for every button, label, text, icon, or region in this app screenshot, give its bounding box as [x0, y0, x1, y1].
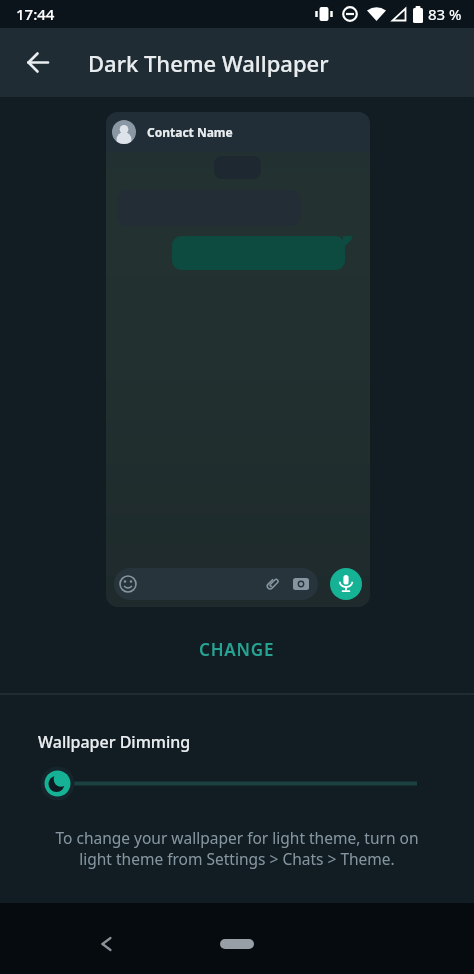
button[interactable] — [24, 759, 450, 807]
button[interactable] — [330, 568, 362, 600]
staticText: 17:44 — [16, 4, 55, 24]
staticText: Contact Name — [147, 124, 233, 140]
staticText: Dark Theme Wallpaper — [88, 48, 329, 78]
button[interactable] — [6, 28, 70, 97]
staticText: 83 % — [428, 4, 462, 24]
button[interactable] — [220, 939, 254, 949]
staticText: CHANGE — [199, 638, 275, 661]
button[interactable]: CHANGE — [0, 630, 474, 668]
staticText: To change your wallpaper for light theme… — [0, 827, 474, 870]
staticText: Wallpaper Dimming — [38, 731, 191, 753]
button[interactable] — [88, 926, 124, 962]
